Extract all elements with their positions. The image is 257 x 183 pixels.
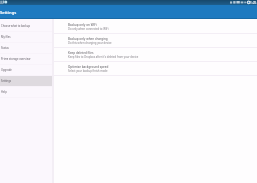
staticText: Keep files to Dropbox after it's deleted… (68, 55, 139, 59)
button[interactable]: Help (0, 87, 52, 97)
button[interactable]: Optimize background speed (54, 62, 257, 76)
button[interactable]: Choose what to backup (0, 21, 52, 31)
button[interactable]: Upgrade (0, 65, 52, 75)
staticText: Backup only when charging (68, 37, 108, 41)
button[interactable]: Keep deleted files (54, 48, 257, 62)
button[interactable]: Settings (0, 76, 52, 86)
staticText: Select your backup finish mode (68, 69, 108, 73)
button[interactable]: Status (0, 43, 52, 53)
staticText: Choose what to backup (1, 24, 31, 28)
button[interactable]: Backup only when charging (54, 34, 257, 48)
staticText: Upgrade (1, 68, 12, 72)
staticText: Help (1, 90, 7, 94)
staticText: Backup only on WiFi (68, 23, 97, 27)
button[interactable]: Prime storage overview (0, 54, 52, 64)
staticText: Keep deleted files (68, 51, 94, 55)
button[interactable]: Backup only on WiFi (54, 20, 257, 34)
staticText: Optimize background speed (68, 65, 109, 69)
staticText: Settings (1, 79, 12, 83)
staticText: Status (1, 46, 9, 50)
staticText: Do only when connected to WiFi (68, 27, 109, 31)
staticText: Do this when charging your device (68, 41, 112, 45)
staticText: Prime storage overview (1, 57, 31, 61)
staticText: My files (1, 35, 11, 39)
staticText: 1:25 (250, 1, 257, 5)
button[interactable]: My files (0, 32, 52, 42)
staticText: Settings (0, 10, 17, 16)
